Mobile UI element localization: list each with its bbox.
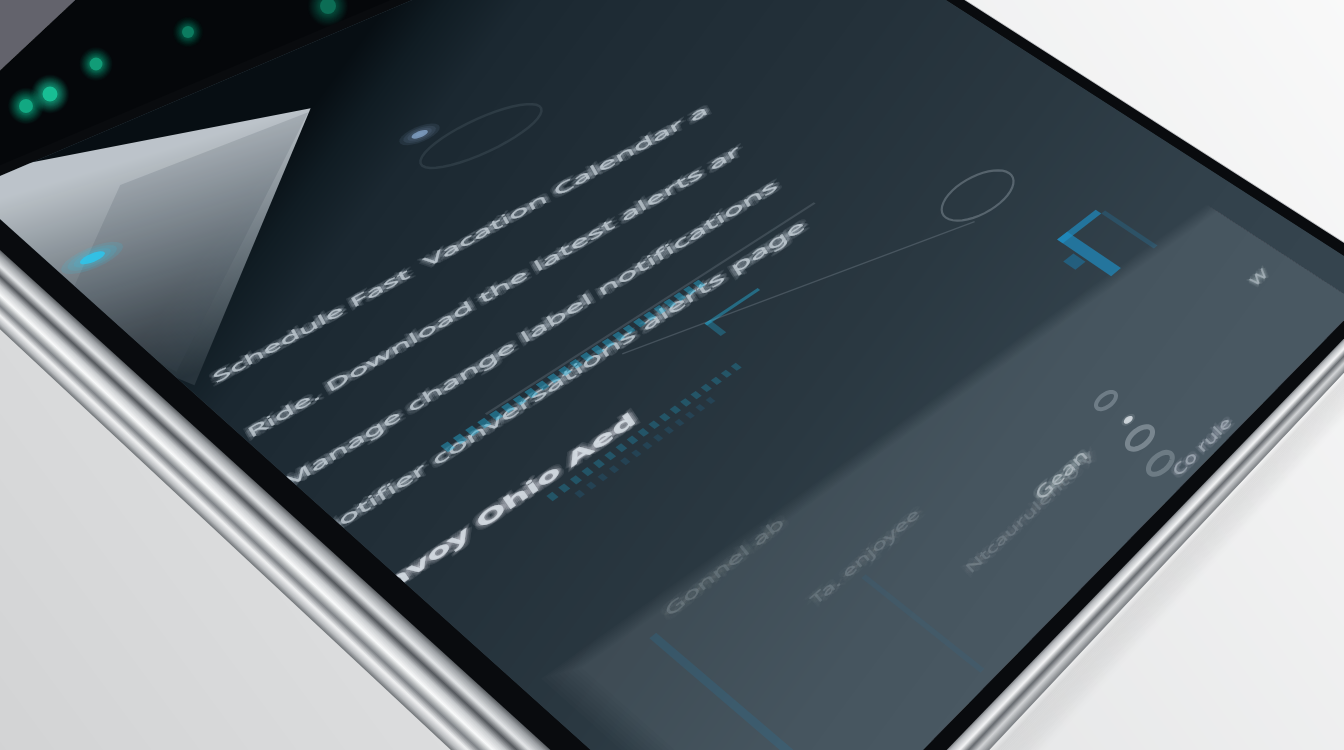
button[interactable]: Phone on desk showing dark app screen <box>0 0 1344 750</box>
